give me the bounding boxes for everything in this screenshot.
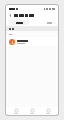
button[interactable] (9, 20, 29, 25)
button[interactable]: Back (8, 13, 13, 18)
button[interactable]: Sort (47, 22, 55, 24)
button[interactable]: Home (10, 107, 22, 115)
button[interactable]: Profile (42, 107, 54, 115)
button[interactable]: Discover (26, 107, 38, 115)
button[interactable] (6, 37, 58, 46)
